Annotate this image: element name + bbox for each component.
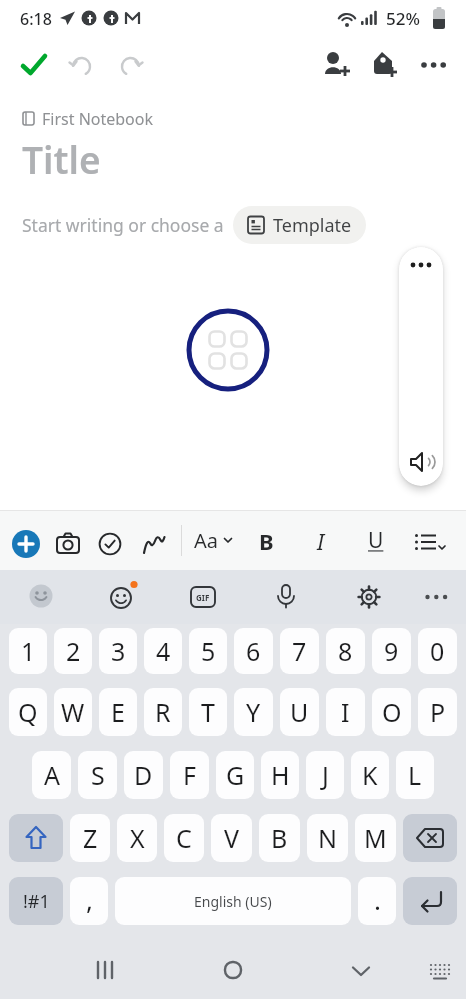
staticText: 52%: [386, 7, 420, 30]
button[interactable]: [124, 10, 142, 28]
button[interactable]: E: [99, 688, 137, 736]
staticText: E: [111, 695, 125, 729]
button[interactable]: 2: [54, 628, 92, 674]
button[interactable]: J: [306, 751, 344, 799]
button[interactable]: !#1: [9, 877, 63, 925]
button[interactable]: [368, 50, 398, 80]
staticText: 2: [66, 634, 81, 668]
staticText: First Notebook: [42, 108, 154, 128]
button[interactable]: [403, 814, 457, 862]
button[interactable]: [109, 580, 141, 612]
button[interactable]: Template: [233, 206, 366, 244]
staticText: J: [322, 758, 329, 792]
button[interactable]: S: [78, 751, 117, 799]
button[interactable]: 1: [9, 628, 47, 674]
button[interactable]: C: [164, 814, 204, 862]
button[interactable]: P: [418, 688, 457, 736]
button[interactable]: G: [216, 751, 254, 799]
button[interactable]: 8: [326, 628, 365, 674]
button[interactable]: [140, 531, 166, 557]
staticText: Start writing or choose a: [22, 213, 224, 237]
button[interactable]: English (US): [115, 877, 351, 925]
button[interactable]: [59, 10, 76, 27]
button[interactable]: F: [170, 751, 209, 799]
button[interactable]: [95, 961, 117, 983]
button[interactable]: U: [362, 511, 390, 570]
button[interactable]: [361, 10, 379, 28]
button[interactable]: W: [54, 688, 92, 736]
staticText: P: [430, 695, 446, 729]
button[interactable]: [186, 308, 270, 392]
button[interactable]: [55, 531, 81, 557]
button[interactable]: [274, 584, 298, 608]
button[interactable]: 9: [372, 628, 411, 674]
button[interactable]: 6: [234, 628, 273, 674]
button[interactable]: [19, 50, 49, 80]
button[interactable]: [68, 52, 94, 78]
staticText: Z: [83, 821, 98, 855]
button[interactable]: O: [372, 688, 411, 736]
staticText: F: [183, 758, 196, 792]
button[interactable]: ,: [70, 877, 108, 925]
staticText: G: [226, 758, 245, 792]
button[interactable]: First Notebook: [22, 108, 154, 128]
button[interactable]: [9, 814, 63, 862]
button[interactable]: U: [280, 688, 319, 736]
button[interactable]: 5: [189, 628, 227, 674]
button[interactable]: [98, 532, 122, 556]
button[interactable]: [118, 52, 144, 78]
button[interactable]: V: [211, 814, 252, 862]
button[interactable]: [81, 10, 97, 26]
staticText: U: [290, 695, 309, 729]
staticText: English (US): [194, 892, 272, 911]
button[interactable]: I: [326, 688, 365, 736]
button[interactable]: .: [358, 877, 396, 925]
button[interactable]: [224, 961, 243, 980]
button[interactable]: B: [252, 511, 280, 570]
button[interactable]: [322, 50, 352, 80]
button[interactable]: [12, 530, 40, 558]
button[interactable]: Q: [9, 688, 47, 736]
button[interactable]: [351, 965, 371, 985]
staticText: Title: [22, 134, 101, 184]
button[interactable]: GIF: [190, 586, 216, 608]
staticText: Template: [273, 213, 352, 238]
staticText: U: [368, 526, 384, 555]
staticText: V: [224, 821, 240, 855]
button[interactable]: [103, 10, 119, 26]
button[interactable]: H: [261, 751, 299, 799]
button[interactable]: Aa: [194, 511, 238, 570]
button[interactable]: [420, 58, 450, 88]
button[interactable]: N: [307, 814, 348, 862]
staticText: H: [271, 758, 290, 792]
button[interactable]: Y: [234, 688, 273, 736]
staticText: Y: [246, 695, 261, 729]
button[interactable]: K: [351, 751, 389, 799]
button[interactable]: I: [308, 511, 334, 570]
button[interactable]: X: [117, 814, 157, 862]
button[interactable]: Z: [70, 814, 110, 862]
button[interactable]: A: [32, 751, 71, 799]
button[interactable]: [432, 7, 454, 29]
button[interactable]: B: [259, 814, 300, 862]
button[interactable]: 4: [144, 628, 182, 674]
button[interactable]: [399, 247, 443, 486]
button[interactable]: L: [396, 751, 434, 799]
button[interactable]: [414, 532, 448, 566]
button[interactable]: [28, 583, 54, 609]
button[interactable]: [428, 962, 452, 986]
button[interactable]: 0: [418, 628, 457, 674]
button[interactable]: D: [124, 751, 163, 799]
button[interactable]: T: [189, 688, 227, 736]
staticText: 4: [156, 634, 171, 668]
staticText: I: [317, 526, 325, 556]
button[interactable]: R: [144, 688, 182, 736]
button[interactable]: [424, 592, 452, 620]
button[interactable]: [356, 584, 382, 610]
button[interactable]: M: [355, 814, 396, 862]
button[interactable]: [403, 877, 457, 925]
button[interactable]: 3: [99, 628, 137, 674]
staticText: 3: [111, 634, 126, 668]
button[interactable]: [336, 8, 358, 30]
button[interactable]: 7: [280, 628, 319, 674]
